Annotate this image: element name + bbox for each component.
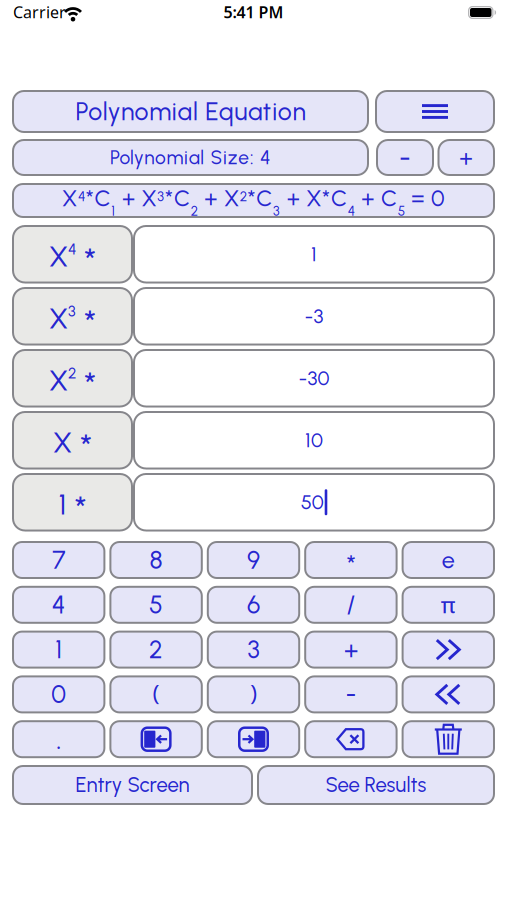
staticText: / <box>346 590 355 620</box>
button[interactable] <box>207 720 300 758</box>
button[interactable]: - <box>376 139 434 176</box>
staticText: Carrier <box>13 1 66 23</box>
button[interactable]: 0 <box>12 675 105 713</box>
staticText: * <box>80 426 92 468</box>
button[interactable]: 50 <box>133 473 495 531</box>
button[interactable]: 6 <box>207 586 300 624</box>
button[interactable]: X <box>12 411 133 469</box>
staticText: 1 <box>311 242 317 266</box>
staticText: - <box>345 680 356 709</box>
button[interactable]: . <box>12 720 105 758</box>
staticText: X <box>49 363 68 397</box>
button[interactable]: 4 <box>12 586 105 624</box>
staticText: Entry Screen <box>75 773 189 797</box>
button[interactable]: X <box>12 349 133 407</box>
staticText: 4 <box>68 240 76 258</box>
button[interactable]: X <box>12 225 133 283</box>
staticText: ( <box>152 680 160 709</box>
button[interactable]: 2 <box>109 631 203 669</box>
staticText: 5:41 PM <box>223 1 283 23</box>
button[interactable]: ) <box>207 675 300 713</box>
staticText: + <box>459 143 473 171</box>
staticText: 7 <box>52 545 65 575</box>
staticText: 3 <box>68 302 76 320</box>
button[interactable]: π <box>402 586 495 624</box>
staticText: 9 <box>247 545 260 575</box>
button[interactable]: 7 <box>12 541 105 579</box>
button[interactable]: X4*C1 + X3*C2 + X2*C3 + X*C4 + C5 = 0 <box>12 183 495 218</box>
button[interactable]: + <box>437 139 495 176</box>
button[interactable]: 5 <box>109 586 203 624</box>
staticText: - <box>399 141 411 173</box>
staticText: X <box>53 425 72 459</box>
staticText: 6 <box>247 590 260 620</box>
staticText: 4 <box>52 590 66 620</box>
button[interactable]: + <box>304 631 398 669</box>
staticText: X4*C1 + X3*C2 + X2*C3 + X*C4 + C5 = 0 <box>62 185 445 219</box>
staticText: e <box>442 546 455 574</box>
button[interactable]: * <box>304 541 398 579</box>
staticText: . <box>56 722 61 756</box>
staticText: * <box>74 488 86 530</box>
staticText: 10 <box>305 428 323 452</box>
button[interactable]: - <box>304 675 398 713</box>
staticText: X <box>49 239 68 273</box>
button[interactable]: See Results <box>257 765 495 805</box>
staticText: * <box>346 549 355 581</box>
staticText: -3 <box>304 304 323 328</box>
staticText: 2 <box>149 635 163 664</box>
button[interactable]: 10 <box>133 411 495 469</box>
staticText: X <box>49 301 68 335</box>
staticText: -30 <box>298 366 329 390</box>
button[interactable]: Polynomial Equation <box>12 90 369 133</box>
staticText: π <box>441 590 456 620</box>
staticText: See Results <box>325 773 426 797</box>
staticText: Polynomial Equation <box>76 97 305 126</box>
staticText: 1 <box>58 487 66 521</box>
button[interactable]: / <box>304 586 398 624</box>
staticText: 8 <box>150 545 163 575</box>
staticText: 1 <box>55 635 62 664</box>
button[interactable] <box>304 720 398 758</box>
staticText: * <box>84 302 96 344</box>
button[interactable]: -30 <box>133 349 495 407</box>
button[interactable]: -3 <box>133 287 495 345</box>
button[interactable]: Entry Screen <box>12 765 253 805</box>
button[interactable]: ( <box>109 675 203 713</box>
staticText: 2 <box>68 364 76 382</box>
button[interactable]: 3 <box>207 631 300 669</box>
button[interactable]: e <box>402 541 495 579</box>
button[interactable]: 1 <box>12 473 133 531</box>
staticText: ) <box>249 680 257 709</box>
staticText: 3 <box>247 635 259 664</box>
staticText: + <box>344 635 358 664</box>
button[interactable] <box>375 90 495 133</box>
button[interactable] <box>109 720 203 758</box>
staticText: 0 <box>51 680 66 709</box>
button[interactable] <box>402 631 495 669</box>
button[interactable]: 1 <box>133 225 495 283</box>
staticText: Polynomial Size: 4 <box>110 146 271 169</box>
button[interactable]: 1 <box>12 631 105 669</box>
button[interactable] <box>402 720 495 758</box>
staticText: * <box>84 364 96 406</box>
button[interactable] <box>402 675 495 713</box>
button[interactable]: Polynomial Size: 4 <box>12 139 369 176</box>
staticText: * <box>84 240 96 282</box>
staticText: 5 <box>149 590 163 620</box>
button[interactable]: 9 <box>207 541 300 579</box>
button[interactable]: X <box>12 287 133 345</box>
staticText: 50 <box>301 490 324 514</box>
button[interactable]: 8 <box>109 541 203 579</box>
